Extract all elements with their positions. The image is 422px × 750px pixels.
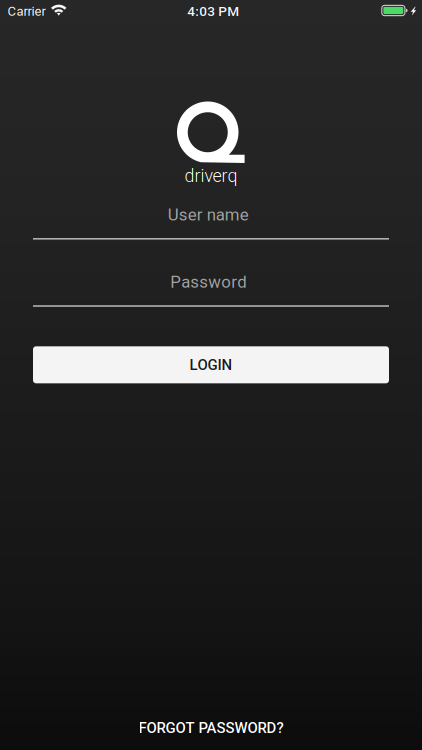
staticText: FORGOT PASSWORD? (138, 719, 283, 737)
staticText: LOGIN (189, 356, 232, 374)
staticText: Carrier (8, 4, 46, 19)
staticText: driverq (184, 165, 237, 186)
button[interactable]: FORGOT PASSWORD? (0, 708, 422, 748)
staticText: Password (170, 272, 246, 292)
staticText: User name (168, 205, 249, 225)
button[interactable]: LOGIN (33, 346, 389, 383)
staticText: 4:03 PM (187, 3, 239, 19)
